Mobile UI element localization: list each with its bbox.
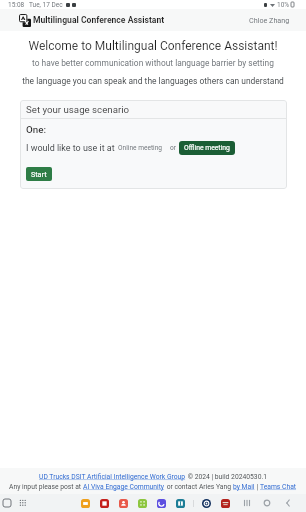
staticText: 15:08 — [8, 1, 25, 9]
button[interactable]: Screenshot — [3, 499, 11, 507]
button[interactable]: Files — [81, 499, 90, 508]
staticText: Welcome to Multilingual Conference Assis… — [28, 39, 278, 53]
button[interactable]: Offline meeting — [179, 141, 235, 155]
button[interactable]: Calculator — [138, 499, 147, 508]
staticText: or contact Aries Yang — [165, 483, 233, 491]
button[interactable]: UD Trucks DSIT Artificial Intelligence W… — [39, 473, 186, 481]
button[interactable]: Store — [221, 499, 230, 508]
staticText: Start — [31, 170, 47, 178]
staticText: Set your usage scenario — [26, 104, 130, 115]
staticText: to have better communication without lan… — [32, 58, 274, 68]
button[interactable]: AI Viva Engage Community — [83, 483, 165, 491]
button[interactable]: Home — [262, 498, 272, 508]
staticText: Any input please post at — [9, 483, 83, 491]
staticText: I would like to use it at — [26, 143, 115, 154]
staticText: One: — [26, 124, 47, 135]
button[interactable]: Recent apps — [242, 498, 252, 508]
button[interactable]: by Mail — [233, 483, 255, 491]
button[interactable]: Calendar — [176, 499, 185, 508]
button[interactable]: Settings — [202, 499, 211, 508]
button[interactable]: Browser — [157, 499, 166, 508]
other: Translate — [19, 14, 31, 27]
button[interactable]: All apps — [19, 499, 27, 507]
button[interactable]: Teams Chat — [260, 483, 297, 491]
staticText: Multilingual Conference Assistant — [33, 15, 165, 25]
staticText: | — [255, 483, 260, 491]
button[interactable]: Online meeting — [115, 141, 166, 155]
staticText: Offline meeting — [184, 144, 230, 152]
staticText: 10% — [277, 1, 290, 9]
staticText: © 2024 | build 20240530.1 — [186, 473, 268, 481]
staticText: or — [170, 144, 176, 152]
button[interactable]: Start — [26, 167, 52, 181]
button[interactable]: Chloe Zhang — [249, 16, 290, 24]
button[interactable]: Contacts — [119, 499, 128, 508]
button[interactable]: Notes — [100, 499, 109, 508]
staticText: the language you can speak and the langu… — [22, 76, 284, 86]
staticText: Tue, 17 Dec — [29, 1, 63, 9]
button[interactable]: Back — [283, 498, 293, 508]
staticText: Online meeting — [118, 144, 163, 152]
staticText: Chloe Zhang — [249, 16, 290, 24]
